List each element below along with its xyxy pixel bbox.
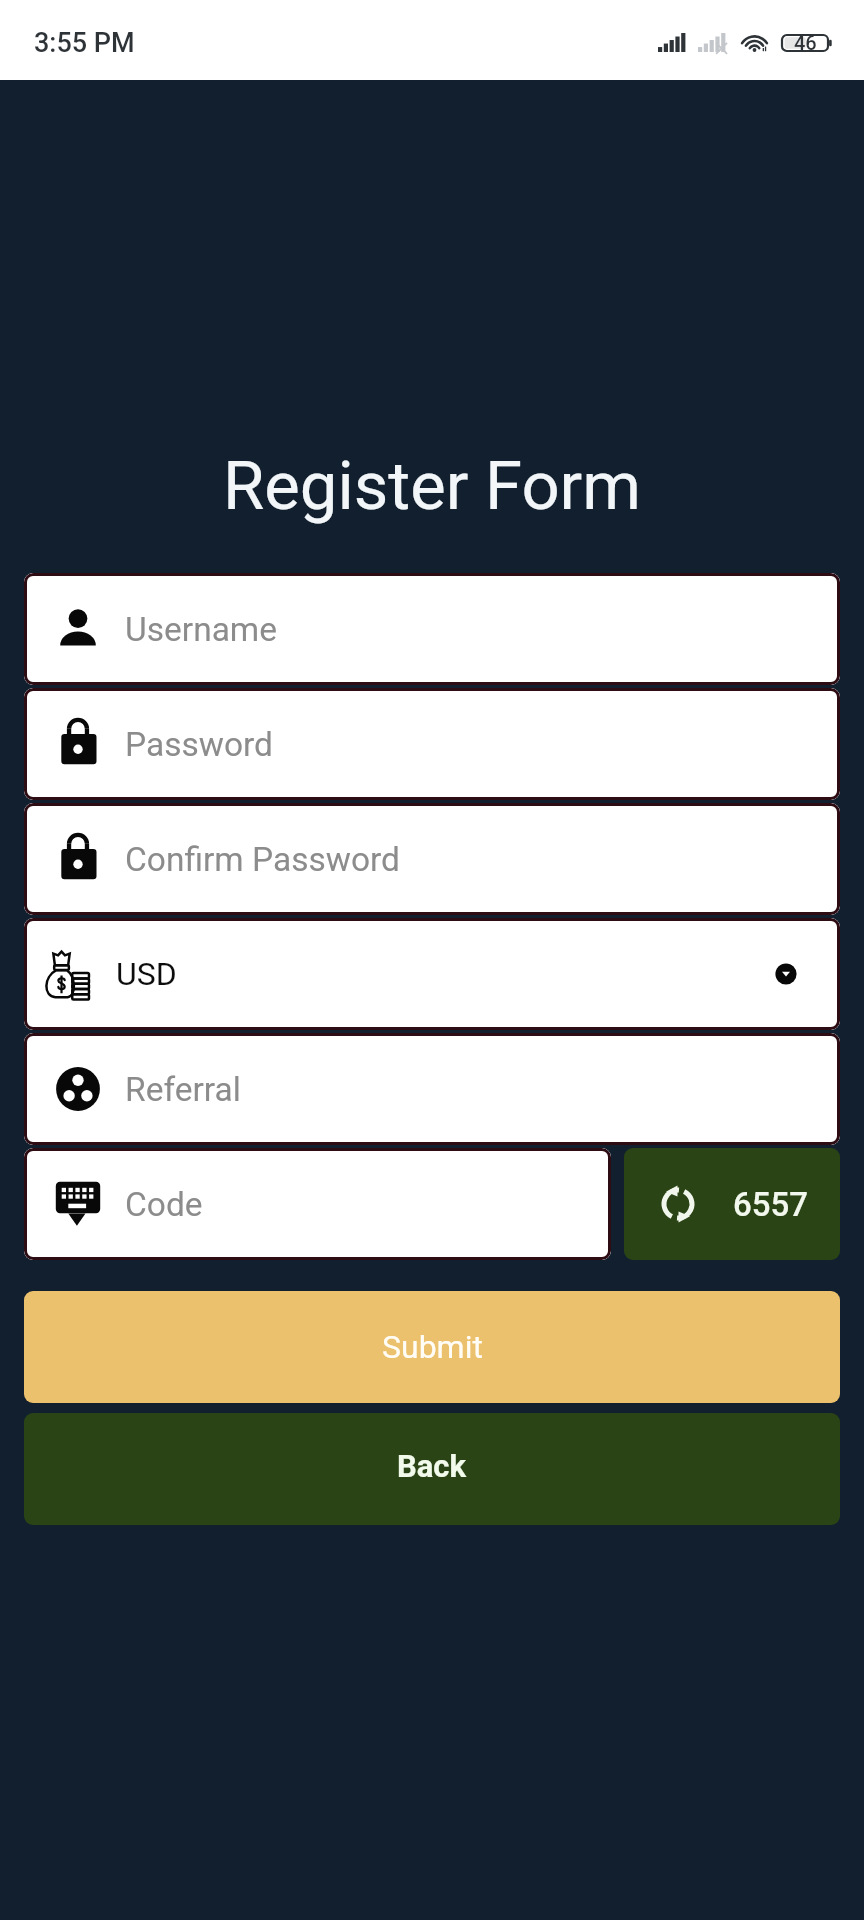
- button[interactable]: Password: [24, 688, 840, 800]
- button[interactable]: Back: [24, 1413, 840, 1525]
- button[interactable]: Refresh code: [624, 1148, 840, 1260]
- staticText: USD: [116, 955, 177, 993]
- button[interactable]: USD: [24, 918, 840, 1030]
- staticText: Back: [397, 1448, 467, 1484]
- button[interactable]: Select currency: [768, 956, 804, 992]
- staticText: Code: [125, 1185, 203, 1224]
- button[interactable]: Referral: [24, 1033, 840, 1145]
- button[interactable]: Username: [24, 573, 840, 685]
- staticText: Referral: [125, 1070, 241, 1109]
- staticText: Confirm Password: [125, 840, 400, 879]
- staticText: 3:55 PM: [34, 27, 135, 59]
- button[interactable]: Code: [24, 1148, 611, 1260]
- staticText: Submit: [382, 1328, 483, 1366]
- other: Refresh code: [655, 1181, 701, 1227]
- staticText: 46: [794, 31, 817, 54]
- staticText: Username: [125, 610, 277, 649]
- staticText: Password: [125, 725, 273, 764]
- button[interactable]: Confirm Password: [24, 803, 840, 915]
- button[interactable]: Submit: [24, 1291, 840, 1403]
- staticText: Register Form: [0, 447, 864, 526]
- staticText: 6557: [733, 1185, 809, 1224]
